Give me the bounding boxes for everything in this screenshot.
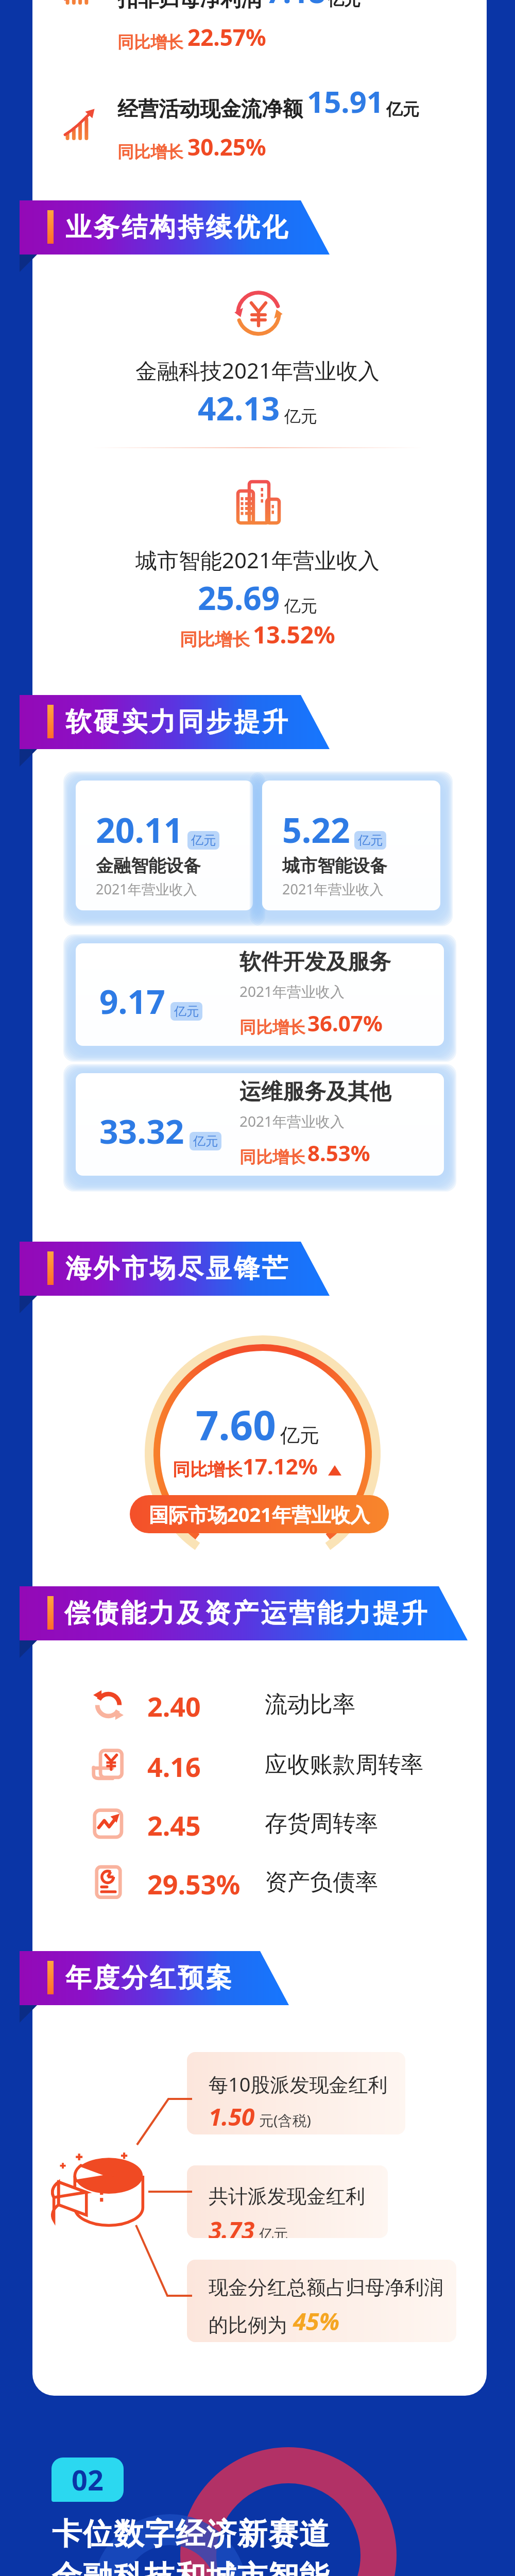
staticText: 亿元 bbox=[193, 1133, 218, 1149]
staticText: 流动比率 bbox=[265, 1690, 355, 1719]
staticText: 亿元 bbox=[358, 833, 383, 848]
staticText: 7.60 bbox=[196, 1397, 276, 1452]
staticText: 运维服务及其他 bbox=[239, 1078, 391, 1106]
staticText: 42.13 bbox=[198, 386, 280, 430]
button[interactable]: 4.16 bbox=[77, 1737, 386, 1794]
staticText: 扣非归母净利润 bbox=[117, 0, 262, 12]
staticText: 金融科技和城市智能 bbox=[51, 2558, 330, 2576]
staticText: 海外市场尽显锋芒 bbox=[64, 1252, 289, 1285]
staticText: 45% bbox=[293, 2305, 340, 2337]
button[interactable]: 现金分红总额占归母净利润 bbox=[187, 2260, 456, 2342]
staticText: 现金分红总额占归母净利润 bbox=[209, 2275, 443, 2300]
staticText: 同比增长 bbox=[180, 629, 250, 651]
button[interactable]: 9.17 bbox=[76, 943, 444, 1046]
staticText: 亿元 bbox=[191, 833, 216, 848]
button[interactable]: 共计派发现金红利 bbox=[187, 2165, 388, 2238]
button[interactable]: 5.22 bbox=[262, 781, 440, 910]
staticText: 29.53% bbox=[147, 1866, 241, 1902]
staticText: 的比例为 bbox=[209, 2313, 287, 2337]
staticText: 7.18 bbox=[266, 0, 325, 12]
staticText: 9.17 bbox=[99, 979, 165, 1024]
staticText: 业务结构持续优化 bbox=[64, 211, 289, 244]
staticText: 33.32 bbox=[99, 1109, 184, 1154]
staticText: 同比增长 bbox=[117, 142, 183, 162]
staticText: 金融智能设备 bbox=[96, 855, 201, 877]
button[interactable]: 2.45 bbox=[77, 1796, 386, 1853]
staticText: 金融科技2021年营业收入 bbox=[0, 355, 515, 385]
staticText: 30.25% bbox=[187, 131, 266, 162]
staticText: 资产负债率 bbox=[265, 1868, 378, 1896]
staticText: 城市智能设备 bbox=[282, 855, 387, 877]
button[interactable]: 国际市场2021年营业收入 bbox=[130, 1495, 389, 1533]
staticText: 软件开发及服务 bbox=[239, 948, 391, 976]
button[interactable]: 每10股派发现金红利 bbox=[187, 2052, 405, 2134]
staticText: 元(含税) bbox=[259, 2110, 311, 2130]
staticText: 同比增长 bbox=[239, 1017, 305, 1038]
staticText: 22.57% bbox=[187, 22, 266, 53]
staticText: 亿元 bbox=[174, 1004, 199, 1019]
button[interactable]: 29.53% bbox=[77, 1855, 386, 1911]
button[interactable]: 2.40 bbox=[77, 1677, 386, 1734]
staticText: 20.11 bbox=[96, 806, 183, 853]
staticText: 亿元 bbox=[328, 0, 360, 10]
staticText: 每10股派发现金红利 bbox=[209, 2071, 388, 2097]
staticText: 1.50 bbox=[209, 2100, 255, 2133]
button[interactable]: 33.32 bbox=[76, 1073, 444, 1176]
staticText: 2021年营业收入 bbox=[282, 879, 384, 899]
staticText: 同比增长 bbox=[239, 1147, 305, 1167]
staticText: 软硬实力同步提升 bbox=[64, 706, 289, 738]
staticText: 同比增长 bbox=[117, 32, 183, 53]
staticText: 亿元 bbox=[386, 99, 419, 120]
staticText: 城市智能2021年营业收入 bbox=[0, 545, 515, 574]
staticText: 偿债能力及资产运营能力提升 bbox=[64, 1597, 430, 1630]
staticText: 5.22 bbox=[282, 806, 350, 853]
staticText: 17.12% bbox=[243, 1451, 318, 1481]
button[interactable]: 20.11 bbox=[76, 781, 253, 910]
staticText: 经营活动现金流净额 bbox=[117, 96, 303, 122]
staticText: 2021年营业收入 bbox=[239, 1111, 345, 1131]
staticText: 2.40 bbox=[147, 1688, 201, 1724]
staticText: 共计派发现金红利 bbox=[209, 2184, 365, 2209]
staticText: 2.45 bbox=[147, 1807, 201, 1843]
staticText: 3.73 bbox=[209, 2214, 255, 2238]
staticText: 亿元 bbox=[280, 1423, 319, 1448]
staticText: 15.91 bbox=[307, 81, 384, 122]
staticText: 国际市场2021年营业收入 bbox=[149, 1501, 370, 1528]
staticText: 亿元 bbox=[259, 2225, 288, 2238]
staticText: 13.52% bbox=[253, 618, 335, 651]
staticText: 年度分红预案 bbox=[64, 1962, 233, 1994]
staticText: 同比增长 bbox=[173, 1459, 243, 1481]
staticText: 亿元 bbox=[284, 406, 317, 427]
staticText: 25.69 bbox=[198, 576, 280, 619]
staticText: 02 bbox=[72, 2461, 104, 2499]
staticText: 卡位数字经济新赛道 bbox=[51, 2515, 330, 2553]
staticText: 存货周转率 bbox=[265, 1809, 378, 1838]
staticText: 8.53% bbox=[307, 1138, 370, 1167]
staticText: 2021年营业收入 bbox=[239, 981, 345, 1001]
staticText: 2021年营业收入 bbox=[96, 879, 197, 899]
staticText: 应收账款周转率 bbox=[265, 1751, 423, 1779]
staticText: 4.16 bbox=[147, 1748, 201, 1785]
staticText: 36.07% bbox=[307, 1008, 383, 1038]
staticText: 亿元 bbox=[284, 596, 317, 616]
